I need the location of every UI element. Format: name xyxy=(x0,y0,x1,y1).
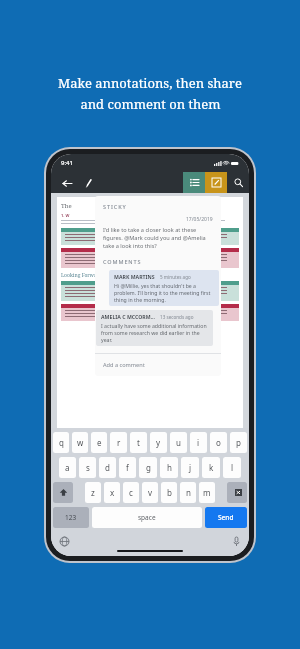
button[interactable]: f xyxy=(119,457,136,478)
button[interactable]: Outline xyxy=(183,172,205,193)
staticText: The xyxy=(61,202,74,210)
button[interactable]: Change keyboard xyxy=(58,535,70,547)
button[interactable]: Shift xyxy=(53,482,73,503)
button[interactable]: Annotate xyxy=(81,175,97,191)
button[interactable]: z xyxy=(85,482,101,503)
staticText: Add a comment xyxy=(103,361,145,369)
staticText: w xyxy=(77,437,84,448)
staticText: p xyxy=(236,437,241,448)
staticText: g xyxy=(146,462,151,473)
button[interactable]: Backspace xyxy=(227,482,247,503)
staticText: m xyxy=(203,487,211,498)
button[interactable]: Send xyxy=(205,507,247,528)
button[interactable]: m xyxy=(199,482,215,503)
button[interactable]: Dictate xyxy=(230,535,242,547)
button[interactable]: Edit xyxy=(205,172,227,193)
staticText: I'd like to take a closer look at these … xyxy=(103,226,213,250)
button[interactable]: b xyxy=(161,482,177,503)
staticText: t xyxy=(137,437,140,448)
button[interactable]: c xyxy=(123,482,139,503)
staticText: Make annotations, then share xyxy=(58,74,242,92)
staticText: l xyxy=(231,462,234,473)
staticText: STICKY xyxy=(103,203,127,210)
button[interactable]: v xyxy=(142,482,158,503)
staticText: z xyxy=(91,487,95,498)
staticText: x xyxy=(110,487,115,498)
button[interactable]: i xyxy=(190,432,207,453)
staticText: o xyxy=(216,437,221,448)
button[interactable]: l xyxy=(223,457,241,478)
staticText: 13 seconds ago xyxy=(160,314,194,320)
button[interactable]: o xyxy=(210,432,227,453)
button[interactable]: Add a comment xyxy=(95,354,221,376)
staticText: r xyxy=(117,437,121,448)
staticText: COMMENTS xyxy=(103,258,142,265)
staticText: y xyxy=(156,437,161,448)
staticText: k xyxy=(209,462,214,473)
button[interactable]: k xyxy=(202,457,220,478)
staticText: 9:41 xyxy=(61,159,73,167)
staticText: Hi @Millie, yes that shouldn't be a prob… xyxy=(114,282,214,303)
button[interactable]: q xyxy=(53,432,69,453)
button[interactable]: r xyxy=(110,432,127,453)
staticText: MARK MARTINS xyxy=(114,273,155,280)
button[interactable]: 123 xyxy=(53,507,89,528)
button[interactable]: Back xyxy=(59,175,75,191)
button[interactable]: p xyxy=(230,432,247,453)
staticText: d xyxy=(105,462,110,473)
button[interactable]: y xyxy=(150,432,167,453)
button[interactable]: h xyxy=(160,457,178,478)
staticText: and comment on them xyxy=(80,95,221,113)
staticText: 1. W xyxy=(61,213,70,218)
staticText: 17/05/2019 xyxy=(186,216,213,223)
button[interactable]: s xyxy=(79,457,96,478)
button[interactable]: g xyxy=(139,457,157,478)
staticText: I actually have some additional informat… xyxy=(101,322,208,343)
staticText: a xyxy=(65,462,70,473)
button[interactable]: t xyxy=(130,432,147,453)
staticText: Send xyxy=(218,513,234,522)
button[interactable]: a xyxy=(59,457,76,478)
staticText: j xyxy=(189,462,192,473)
staticText: c xyxy=(129,487,133,498)
staticText: f xyxy=(126,462,129,473)
staticText: e xyxy=(97,437,102,448)
staticText: h xyxy=(167,462,172,473)
staticText: b xyxy=(167,487,172,498)
staticText: q xyxy=(59,437,64,448)
staticText: i xyxy=(197,437,200,448)
button[interactable]: x xyxy=(104,482,120,503)
staticText: space xyxy=(138,513,156,522)
staticText: v xyxy=(148,487,153,498)
staticText: n xyxy=(186,487,191,498)
button[interactable]: n xyxy=(180,482,196,503)
staticText: Looking Forward xyxy=(61,272,103,279)
staticText: 123 xyxy=(65,513,77,522)
button[interactable]: Search xyxy=(227,172,249,193)
button[interactable]: d xyxy=(99,457,116,478)
button[interactable]: w xyxy=(72,432,88,453)
staticText: 5 minutes ago xyxy=(160,274,191,280)
staticText: u xyxy=(176,437,181,448)
button[interactable]: u xyxy=(170,432,187,453)
button[interactable]: j xyxy=(181,457,199,478)
button[interactable]: space xyxy=(92,507,202,528)
staticText: s xyxy=(86,462,90,473)
staticText: AMELIA C MCCORM... xyxy=(101,313,156,320)
button[interactable]: e xyxy=(91,432,107,453)
